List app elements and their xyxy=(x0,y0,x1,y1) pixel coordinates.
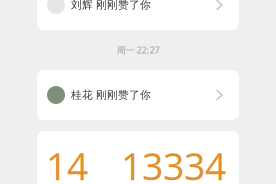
button[interactable]: 桂花 刚刚赞了你 xyxy=(37,70,239,120)
staticText: 桂花 刚刚赞了你 xyxy=(71,88,151,101)
staticText: 13334 xyxy=(121,141,226,184)
staticText: 刘辉 刚刚赞了你 xyxy=(71,0,151,11)
staticText: 周一 22:27 xyxy=(116,44,159,56)
button[interactable]: 刘辉 刚刚赞了你 xyxy=(37,0,239,30)
staticText: 14 xyxy=(46,141,88,184)
